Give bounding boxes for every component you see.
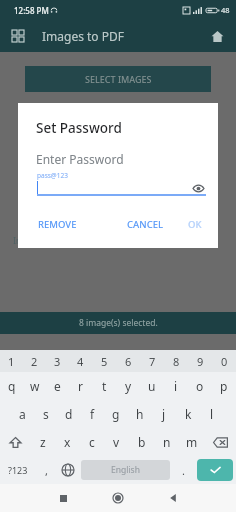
- button[interactable]: r: [69, 372, 92, 400]
- button[interactable]: 1: [0, 350, 23, 372]
- button[interactable]: j: [152, 400, 176, 428]
- button[interactable]: Image compression : 30 %: [12, 200, 112, 246]
- staticText: x: [64, 434, 71, 450]
- button[interactable]: OK: [186, 214, 204, 235]
- button[interactable]: k: [176, 400, 200, 428]
- button[interactable]: f: [80, 400, 104, 428]
- staticText: 2: [31, 354, 38, 369]
- button[interactable]: x: [55, 428, 79, 456]
- button[interactable]: Back: [162, 487, 184, 509]
- button[interactable]: c: [79, 428, 104, 456]
- staticText: g: [112, 406, 120, 422]
- staticText: 5: [101, 354, 108, 369]
- staticText: h: [136, 406, 144, 422]
- button[interactable]: b: [129, 428, 154, 456]
- staticText: c: [89, 434, 95, 450]
- staticText: English: [111, 464, 140, 476]
- staticText: f: [90, 406, 95, 422]
- staticText: Images to PDF: [42, 28, 124, 44]
- button[interactable]: Shift: [0, 428, 31, 456]
- button[interactable]: Home: [107, 487, 129, 509]
- button[interactable]: s: [34, 400, 57, 428]
- button[interactable]: 0: [212, 350, 236, 372]
- button[interactable]: o: [188, 372, 212, 400]
- staticText: k: [185, 406, 192, 422]
- staticText: i: [174, 378, 178, 394]
- staticText: Image compression : 30 %: [13, 235, 112, 246]
- button[interactable]: SELECT IMAGES: [25, 66, 211, 92]
- button[interactable]: l: [200, 400, 224, 428]
- staticText: 7: [149, 354, 156, 369]
- button[interactable]: e: [46, 372, 69, 400]
- button[interactable]: 4: [69, 350, 92, 372]
- button[interactable]: 5: [92, 350, 116, 372]
- button[interactable]: i: [164, 372, 188, 400]
- staticText: a: [19, 406, 26, 422]
- button[interactable]: n: [154, 428, 179, 456]
- button[interactable]: Filter Images: [124, 200, 224, 246]
- staticText: 1: [8, 354, 15, 369]
- staticText: 12:58 PM: [14, 5, 49, 16]
- staticText: SELECT IMAGES: [85, 73, 152, 85]
- button[interactable]: English: [81, 460, 170, 480]
- button[interactable]: g: [104, 400, 128, 428]
- staticText: 48: [221, 5, 230, 15]
- button[interactable]: Enter: [197, 459, 233, 481]
- button[interactable]: ,: [35, 456, 57, 484]
- staticText: REMOVE: [38, 218, 77, 231]
- button[interactable]: t: [92, 372, 116, 400]
- staticText: 8: [173, 354, 180, 369]
- staticText: j: [162, 406, 166, 422]
- staticText: s: [43, 406, 49, 422]
- button[interactable]: m: [179, 428, 204, 456]
- button[interactable]: w: [23, 372, 46, 400]
- staticText: Enter Password: [36, 151, 124, 167]
- staticText: n: [163, 434, 171, 450]
- staticText: 6: [125, 354, 132, 369]
- button[interactable]: z: [31, 428, 55, 456]
- staticText: p: [220, 378, 228, 394]
- button[interactable]: Backspace: [204, 428, 236, 456]
- button[interactable]: 6: [116, 350, 140, 372]
- button[interactable]: REMOVE: [36, 214, 79, 235]
- button[interactable]: 7: [140, 350, 164, 372]
- button[interactable]: Show password: [190, 180, 206, 196]
- staticText: 8 image(s) selected.: [79, 317, 158, 329]
- staticText: t: [102, 378, 107, 394]
- button[interactable]: d: [57, 400, 80, 428]
- staticText: m: [186, 434, 198, 450]
- staticText: q: [8, 378, 16, 394]
- button[interactable]: y: [116, 372, 140, 400]
- button[interactable]: ?123: [0, 456, 35, 484]
- button[interactable]: 2: [23, 350, 46, 372]
- button[interactable]: 9: [188, 350, 212, 372]
- staticText: pass@123: [37, 171, 68, 180]
- button[interactable]: 3: [46, 350, 69, 372]
- staticText: ?123: [8, 464, 28, 476]
- button[interactable]: 8: [164, 350, 188, 372]
- staticText: ,: [45, 463, 48, 478]
- staticText: Set Password: [36, 119, 122, 137]
- button[interactable]: u: [140, 372, 164, 400]
- button[interactable]: CANCEL: [125, 214, 166, 235]
- button[interactable]: p: [212, 372, 236, 400]
- staticText: l: [210, 406, 214, 422]
- button[interactable]: Menu: [6, 24, 30, 48]
- staticText: .: [182, 463, 185, 478]
- staticText: w: [30, 378, 40, 394]
- button[interactable]: q: [0, 372, 23, 400]
- button[interactable]: Home: [206, 25, 228, 47]
- button[interactable]: Change language: [57, 456, 79, 484]
- button[interactable]: Recents: [52, 487, 74, 509]
- button[interactable]: a: [11, 400, 34, 428]
- staticText: o: [196, 378, 204, 394]
- staticText: y: [125, 378, 132, 394]
- staticText: v: [113, 434, 120, 450]
- staticText: 3: [54, 354, 61, 369]
- staticText: 9: [197, 354, 204, 369]
- button[interactable]: v: [104, 428, 129, 456]
- staticText: 0: [221, 354, 228, 369]
- button[interactable]: .: [172, 456, 194, 484]
- button[interactable]: h: [128, 400, 152, 428]
